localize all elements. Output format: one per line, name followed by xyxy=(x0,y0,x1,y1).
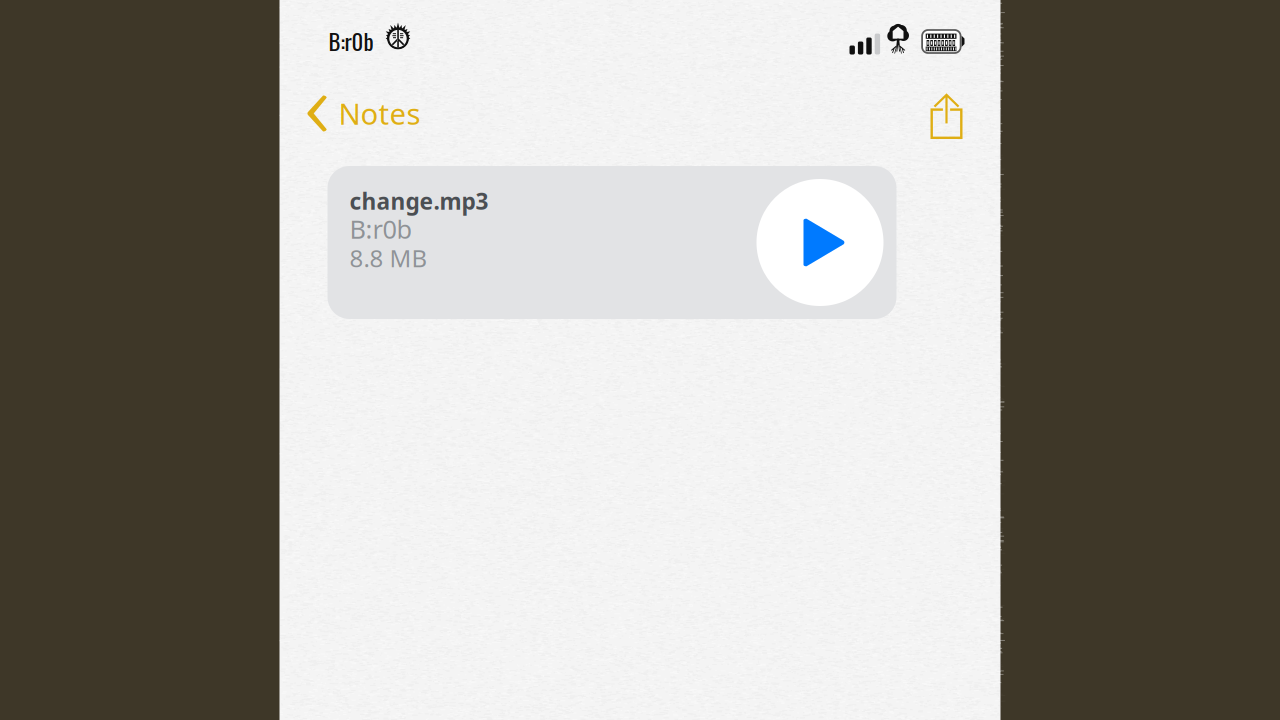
button[interactable]: Share xyxy=(924,87,968,145)
staticText: 8.8 MB xyxy=(349,242,427,274)
button[interactable]: Notes xyxy=(306,82,420,137)
button[interactable]: change.mp3 xyxy=(327,166,896,319)
staticText: B:r0b xyxy=(349,212,412,246)
staticText: B:r0b xyxy=(328,24,373,58)
staticText: Notes xyxy=(338,94,420,133)
staticText: change.mp3 xyxy=(349,186,488,216)
